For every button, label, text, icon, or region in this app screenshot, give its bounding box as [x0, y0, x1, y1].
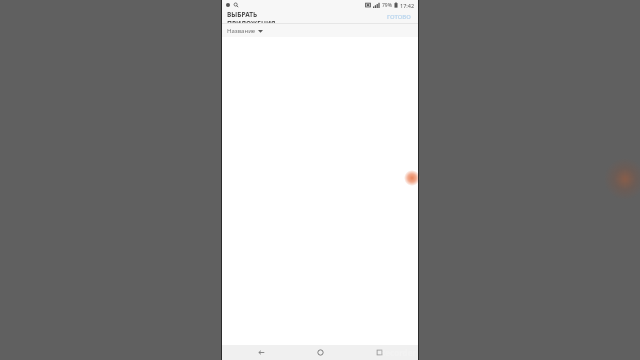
other: Sort order: [258, 29, 263, 33]
button[interactable]: ГОТОВО: [385, 12, 413, 22]
button[interactable]: Back: [241, 345, 281, 360]
button[interactable]: Home: [300, 345, 340, 360]
staticText: 17:42: [400, 2, 415, 9]
button[interactable]: Recent apps: [359, 345, 399, 360]
button[interactable]: Название: [222, 24, 269, 37]
staticText: ГОТОВО: [387, 13, 411, 21]
staticText: Название: [227, 27, 256, 34]
staticText: 79%: [382, 2, 392, 9]
staticText: Recorder: [380, 347, 416, 358]
staticText: ВЫБРАТЬ ПРИЛОЖЕНИЯ: [227, 10, 306, 23]
